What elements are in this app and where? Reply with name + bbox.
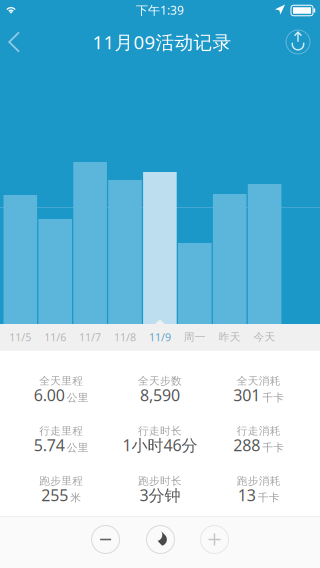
staticText: 行走消耗 bbox=[237, 424, 281, 437]
staticText: 255 bbox=[41, 484, 68, 506]
staticText: 周一 bbox=[184, 330, 206, 343]
staticText: 全天里程 bbox=[39, 374, 83, 387]
staticText: 5.74 bbox=[34, 434, 65, 456]
button[interactable]: 昨天 bbox=[213, 324, 246, 350]
button[interactable]: 11/7 bbox=[73, 324, 107, 350]
staticText: 跑步消耗 bbox=[237, 474, 281, 487]
button[interactable]: 11/8 bbox=[108, 324, 142, 350]
staticText: 1小时46分 bbox=[122, 434, 197, 456]
staticText: 11/5 bbox=[9, 330, 31, 344]
button[interactable]: 11/5 bbox=[3, 324, 37, 350]
staticText: 行走里程 bbox=[39, 424, 83, 437]
staticText: 千卡 bbox=[262, 441, 284, 454]
button[interactable]: Share bbox=[283, 20, 313, 64]
staticText: 今天 bbox=[254, 330, 276, 343]
staticText: 全天步数 bbox=[138, 374, 182, 387]
staticText: 11/8 bbox=[114, 330, 136, 344]
button[interactable]: 周一 bbox=[178, 324, 212, 350]
staticText: 下午1:39 bbox=[136, 2, 184, 18]
staticText: 行走时长 bbox=[138, 424, 182, 437]
staticText: 11/6 bbox=[44, 330, 66, 344]
button[interactable]: 今天 bbox=[248, 324, 281, 350]
staticText: 全天消耗 bbox=[237, 374, 281, 387]
button[interactable]: 11/6 bbox=[38, 324, 72, 350]
staticText: 千卡 bbox=[262, 391, 284, 404]
staticText: 公里 bbox=[67, 441, 89, 454]
staticText: 288 bbox=[233, 434, 260, 456]
staticText: 11/7 bbox=[79, 330, 101, 344]
staticText: 6.00 bbox=[34, 384, 65, 406]
button[interactable]: Sleep mode bbox=[146, 525, 174, 553]
staticText: 跑步里程 bbox=[39, 474, 83, 487]
staticText: 千卡 bbox=[258, 491, 280, 504]
staticText: 昨天 bbox=[219, 330, 241, 343]
staticText: 3分钟 bbox=[139, 484, 180, 506]
staticText: 301 bbox=[233, 384, 260, 406]
staticText: 米 bbox=[70, 491, 81, 504]
staticText: 跑步时长 bbox=[138, 474, 182, 487]
staticText: 11/9 bbox=[149, 330, 171, 344]
button[interactable]: Back bbox=[0, 20, 28, 64]
staticText: 公里 bbox=[67, 391, 89, 404]
staticText: 13 bbox=[238, 484, 256, 506]
button[interactable]: Increase bbox=[200, 525, 228, 553]
staticText: 11月09活动记录 bbox=[92, 30, 231, 54]
button[interactable]: Decrease bbox=[92, 525, 120, 553]
staticText: 8,590 bbox=[140, 384, 180, 406]
button[interactable]: 11/9 bbox=[143, 324, 177, 350]
